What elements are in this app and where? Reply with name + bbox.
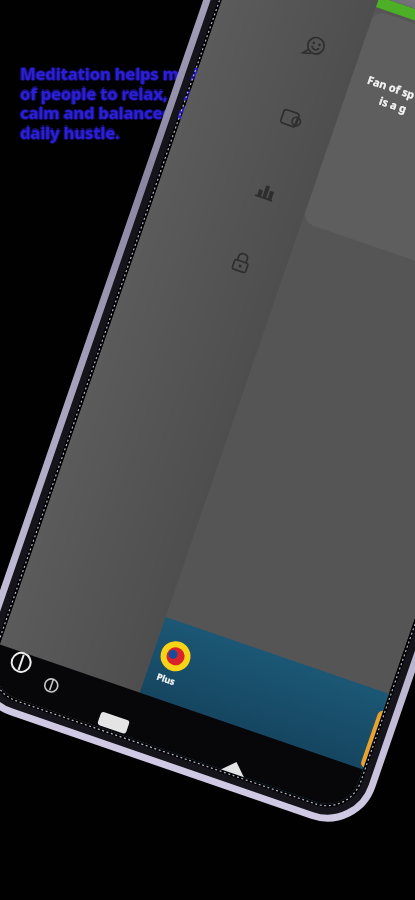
other: Meditation promo screen	[0, 0, 415, 900]
button[interactable]	[0, 0, 415, 900]
